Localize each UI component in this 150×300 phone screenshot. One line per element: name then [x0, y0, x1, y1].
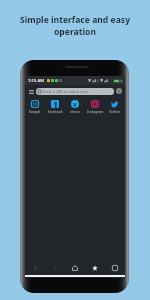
button[interactable]: Home: [65, 263, 85, 273]
button[interactable]: Google: [25, 100, 45, 114]
button[interactable]: Profile: [116, 88, 122, 94]
staticText: vimeo: [70, 109, 80, 114]
button[interactable]: Instagram: [85, 100, 105, 114]
button[interactable]: Tabs: [105, 263, 125, 273]
button[interactable]: Bookmarks: [85, 263, 105, 273]
button[interactable]: Menu: [28, 88, 35, 95]
staticText: Google: [29, 109, 41, 114]
button[interactable]: Twitter: [105, 100, 125, 114]
staticText: Instagram: [87, 109, 104, 114]
staticText: v: [73, 100, 77, 108]
staticText: Enter a URL or search term: [43, 89, 89, 94]
staticText: facebook: [48, 109, 63, 114]
button[interactable]: v: [65, 100, 85, 114]
button[interactable]: facebook: [45, 100, 65, 114]
button[interactable]: Back: [25, 263, 45, 273]
button[interactable]: Forward: [45, 263, 65, 273]
staticText: Twitter: [109, 109, 121, 114]
staticText: Simple interface and easy operation: [8, 14, 142, 37]
button[interactable]: Enter a URL or search term: [36, 88, 114, 95]
staticText: 7:15 AM: [28, 78, 45, 84]
